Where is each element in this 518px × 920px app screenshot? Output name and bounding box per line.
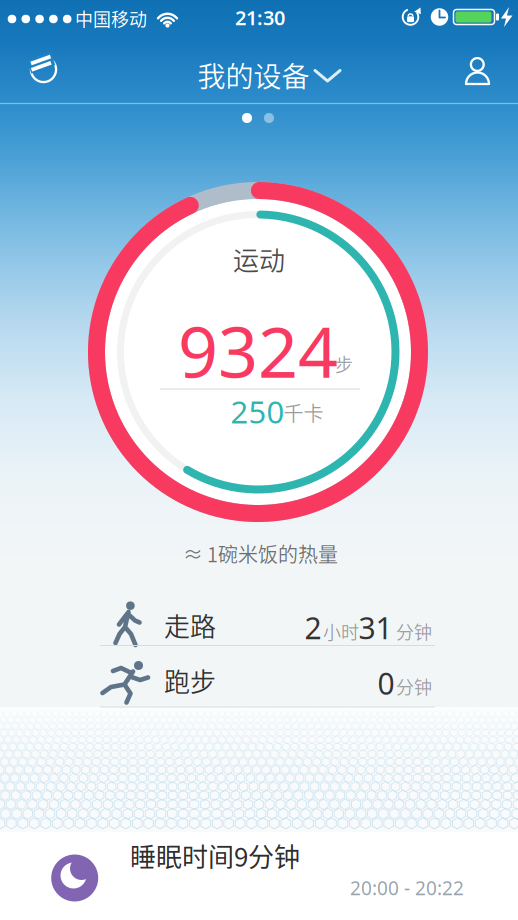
staticText: 分钟 [396, 618, 432, 645]
staticText: 千卡 [283, 398, 323, 427]
staticText: 睡眠时间9分钟 [130, 837, 300, 874]
staticText: 步 [335, 351, 353, 377]
staticText: 21:30 [235, 4, 285, 31]
staticText: 0 [377, 663, 394, 703]
staticText: 运动 [233, 240, 285, 278]
staticText: 我的设备 [197, 55, 309, 95]
staticText: 9324 [178, 303, 338, 398]
staticText: 2 [304, 607, 321, 648]
staticText: 走路 [164, 606, 216, 644]
staticText: 250 [230, 390, 284, 433]
staticText: ≈ 1碗米饭的热量 [183, 539, 338, 568]
staticText: 中国移动 [75, 5, 147, 32]
staticText: 20:00 - 20:22 [350, 875, 464, 901]
staticText: 分钟 [396, 673, 432, 700]
staticText: 小时 [323, 618, 359, 645]
staticText: 31 [358, 607, 392, 648]
staticText: 跑步 [164, 662, 216, 699]
